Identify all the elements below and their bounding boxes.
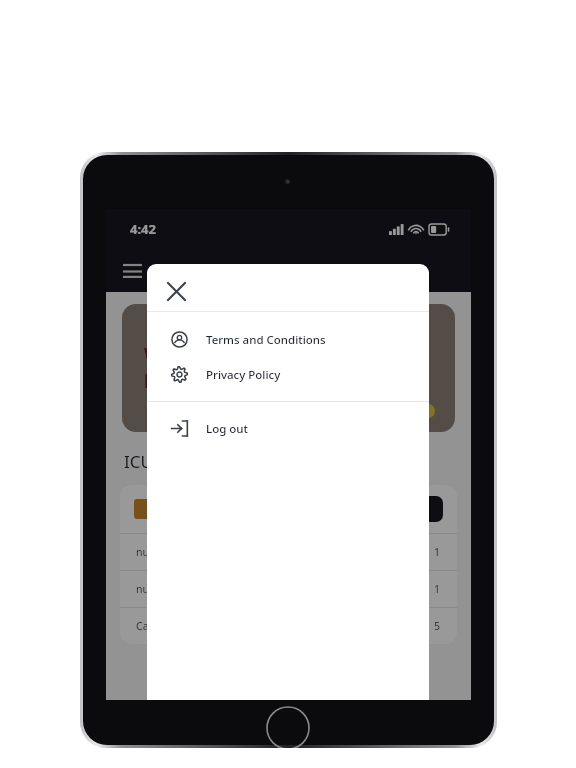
staticText: 1 [434, 545, 441, 559]
staticText: Privacy Policy [206, 367, 281, 383]
staticText: Capacity [136, 619, 178, 633]
button[interactable] [395, 496, 443, 522]
staticText: number of rooms [136, 582, 223, 596]
staticText: Welcome [144, 343, 222, 366]
staticText: ICU [124, 450, 153, 473]
button[interactable]: Terms and Conditions [147, 322, 429, 357]
staticText: Terms and Conditions [206, 332, 326, 348]
button[interactable]: Log out [147, 411, 429, 446]
button[interactable]: Privacy Policy [147, 357, 429, 392]
staticText: number of beds [136, 545, 215, 559]
staticText: 4:42 [130, 220, 156, 238]
staticText: 1 [434, 582, 441, 596]
button[interactable]: Close [159, 274, 193, 308]
button[interactable]: Menu [116, 255, 148, 287]
staticText: Log out [206, 421, 248, 437]
staticText: 5 [434, 619, 441, 633]
staticText: back [144, 370, 185, 393]
